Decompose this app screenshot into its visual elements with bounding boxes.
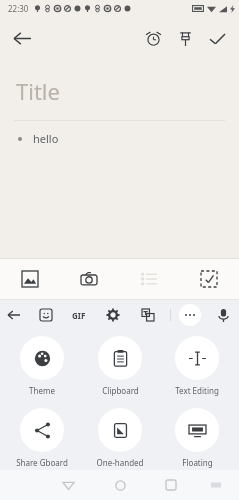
staticText: hello [33,131,59,146]
button[interactable]: Share Gboard [6,408,78,468]
button[interactable]: Translate [136,303,160,327]
button[interactable]: Pin [169,22,201,54]
button[interactable]: Take photo [59,259,119,299]
button[interactable]: Home [107,472,133,498]
button[interactable]: Theme [6,336,78,396]
button[interactable]: Back [2,303,26,327]
button[interactable]: Back [4,20,40,56]
button[interactable]: Keyboard [205,474,227,496]
staticText: Title [16,76,60,106]
staticText: 22:30 [8,3,29,14]
button[interactable]: One-handed [84,408,156,468]
button[interactable]: More [179,304,201,326]
staticText: Share Gboard [16,457,68,468]
button[interactable]: Reminder [137,22,169,54]
staticText: Theme [29,385,55,396]
button[interactable]: Done [201,22,233,54]
staticText: Floating [182,457,213,468]
button[interactable]: Text Editing [161,336,233,396]
staticText: One-handed [96,457,144,468]
button[interactable]: Settings [101,303,125,327]
button[interactable]: GIF [66,302,92,328]
button[interactable]: Clipboard [84,336,156,396]
button[interactable]: Voice input [211,303,235,327]
staticText: GIF [72,310,86,321]
button[interactable]: Stickers [34,303,58,327]
button[interactable]: Checklist [119,259,179,299]
button[interactable]: Add image [0,259,59,299]
button[interactable]: Scan [179,259,239,299]
button[interactable]: Recents [158,472,184,498]
staticText: Text Editing [175,385,219,396]
button[interactable]: Floating [161,408,233,468]
button[interactable]: Back [55,472,81,498]
staticText: Clipboard [102,385,139,396]
